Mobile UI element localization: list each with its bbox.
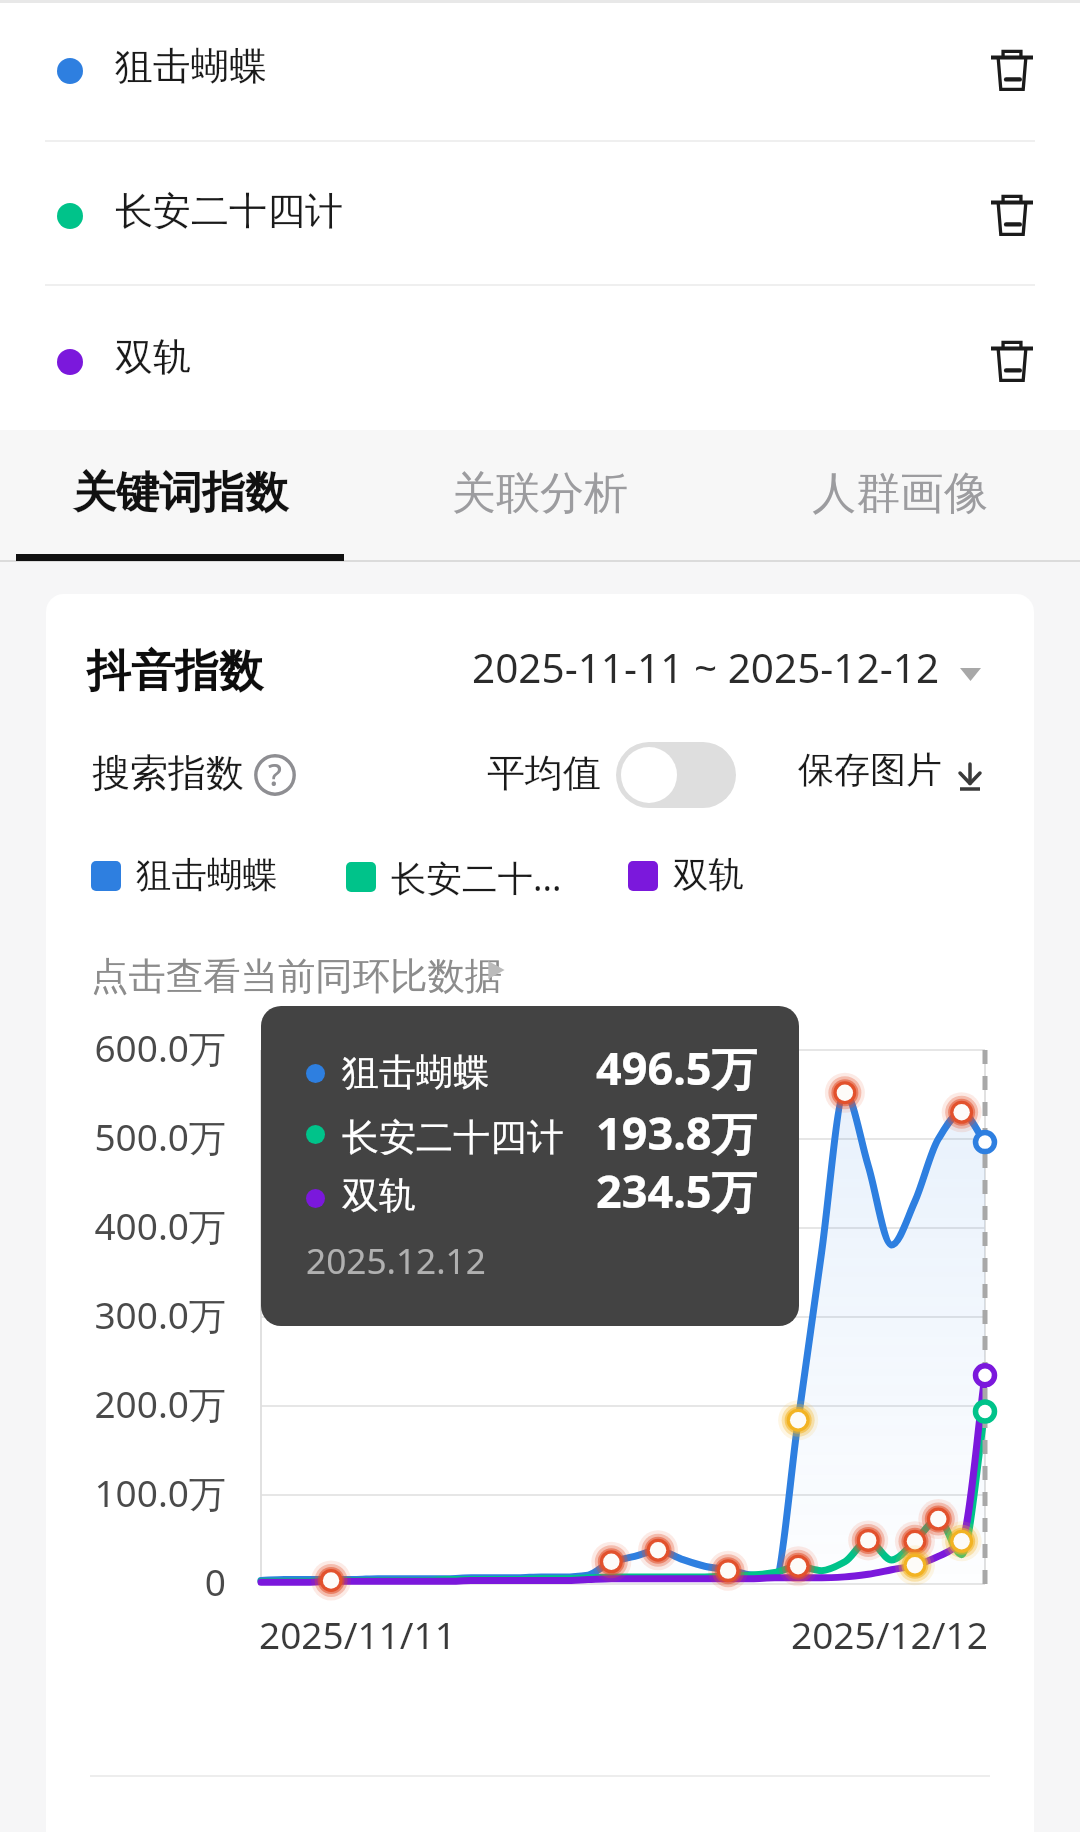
staticText: 双轨 xyxy=(673,853,744,898)
staticText: 狙击蝴蝶 xyxy=(115,42,267,90)
staticText: 长安二十... xyxy=(391,853,562,901)
staticText: 人群画像 xyxy=(812,466,988,521)
staticText: 300.0万 xyxy=(26,1289,226,1340)
staticText: 500.0万 xyxy=(26,1111,226,1162)
staticText: 狙击蝴蝶 xyxy=(342,1049,490,1096)
staticText: 496.5万 xyxy=(596,1037,757,1098)
staticText: 保存图片 xyxy=(798,747,942,792)
staticText: 平均值 xyxy=(487,749,601,797)
button[interactable]: 长安二十四计 xyxy=(0,139,1080,282)
button[interactable]: 狙击蝴蝶 xyxy=(91,853,278,898)
staticText: 双轨 xyxy=(115,333,191,381)
button[interactable]: Delete 双轨 xyxy=(964,313,1060,409)
staticText: 长安二十四计 xyxy=(115,187,343,235)
button[interactable]: Average value toggle xyxy=(616,742,736,808)
button[interactable]: 人群画像 xyxy=(720,430,1080,561)
button[interactable]: Save image xyxy=(950,758,990,796)
staticText: 2025/12/12 xyxy=(791,1609,988,1659)
staticText: 双轨 xyxy=(342,1172,416,1219)
staticText: 193.8万 xyxy=(596,1102,757,1163)
button[interactable]: 关键词指数 xyxy=(0,430,360,561)
button[interactable]: Delete 长安二十四计 xyxy=(964,167,1060,263)
staticText: ? xyxy=(268,753,282,795)
staticText: 2025/11/11 xyxy=(259,1609,456,1659)
staticText: 600.0万 xyxy=(26,1022,226,1073)
staticText: 0 xyxy=(26,1556,226,1606)
staticText: 200.0万 xyxy=(26,1378,226,1429)
staticText: 关联分析 xyxy=(452,466,628,521)
button[interactable]: Delete 狙击蝴蝶 xyxy=(964,22,1060,118)
button[interactable]: 双轨 xyxy=(0,285,1080,428)
staticText: 2025-11-11 ~ 2025-12-12 xyxy=(472,640,940,695)
staticText: 点击查看当前同环比数据 xyxy=(91,953,503,1000)
button[interactable]: Help xyxy=(254,754,296,796)
button[interactable]: 狙击蝴蝶 xyxy=(0,0,1080,137)
staticText: 2025.12.12 xyxy=(306,1236,486,1284)
staticText: 狙击蝴蝶 xyxy=(136,853,278,898)
staticText: 搜索指数 xyxy=(92,749,244,797)
button[interactable]: 2025-11-11 ~ 2025-12-12 xyxy=(466,640,986,700)
staticText: 长安二十四计 xyxy=(342,1114,564,1161)
button[interactable]: 关联分析 xyxy=(360,430,720,561)
button[interactable]: 长安二十... xyxy=(346,853,562,901)
button[interactable]: 双轨 xyxy=(628,853,744,898)
button[interactable]: View comparison data xyxy=(484,958,508,982)
staticText: 抖音指数 xyxy=(87,644,263,699)
staticText: 100.0万 xyxy=(26,1467,226,1518)
staticText: 400.0万 xyxy=(26,1200,226,1251)
staticText: 234.5万 xyxy=(596,1160,757,1221)
staticText: 关键词指数 xyxy=(73,466,288,520)
